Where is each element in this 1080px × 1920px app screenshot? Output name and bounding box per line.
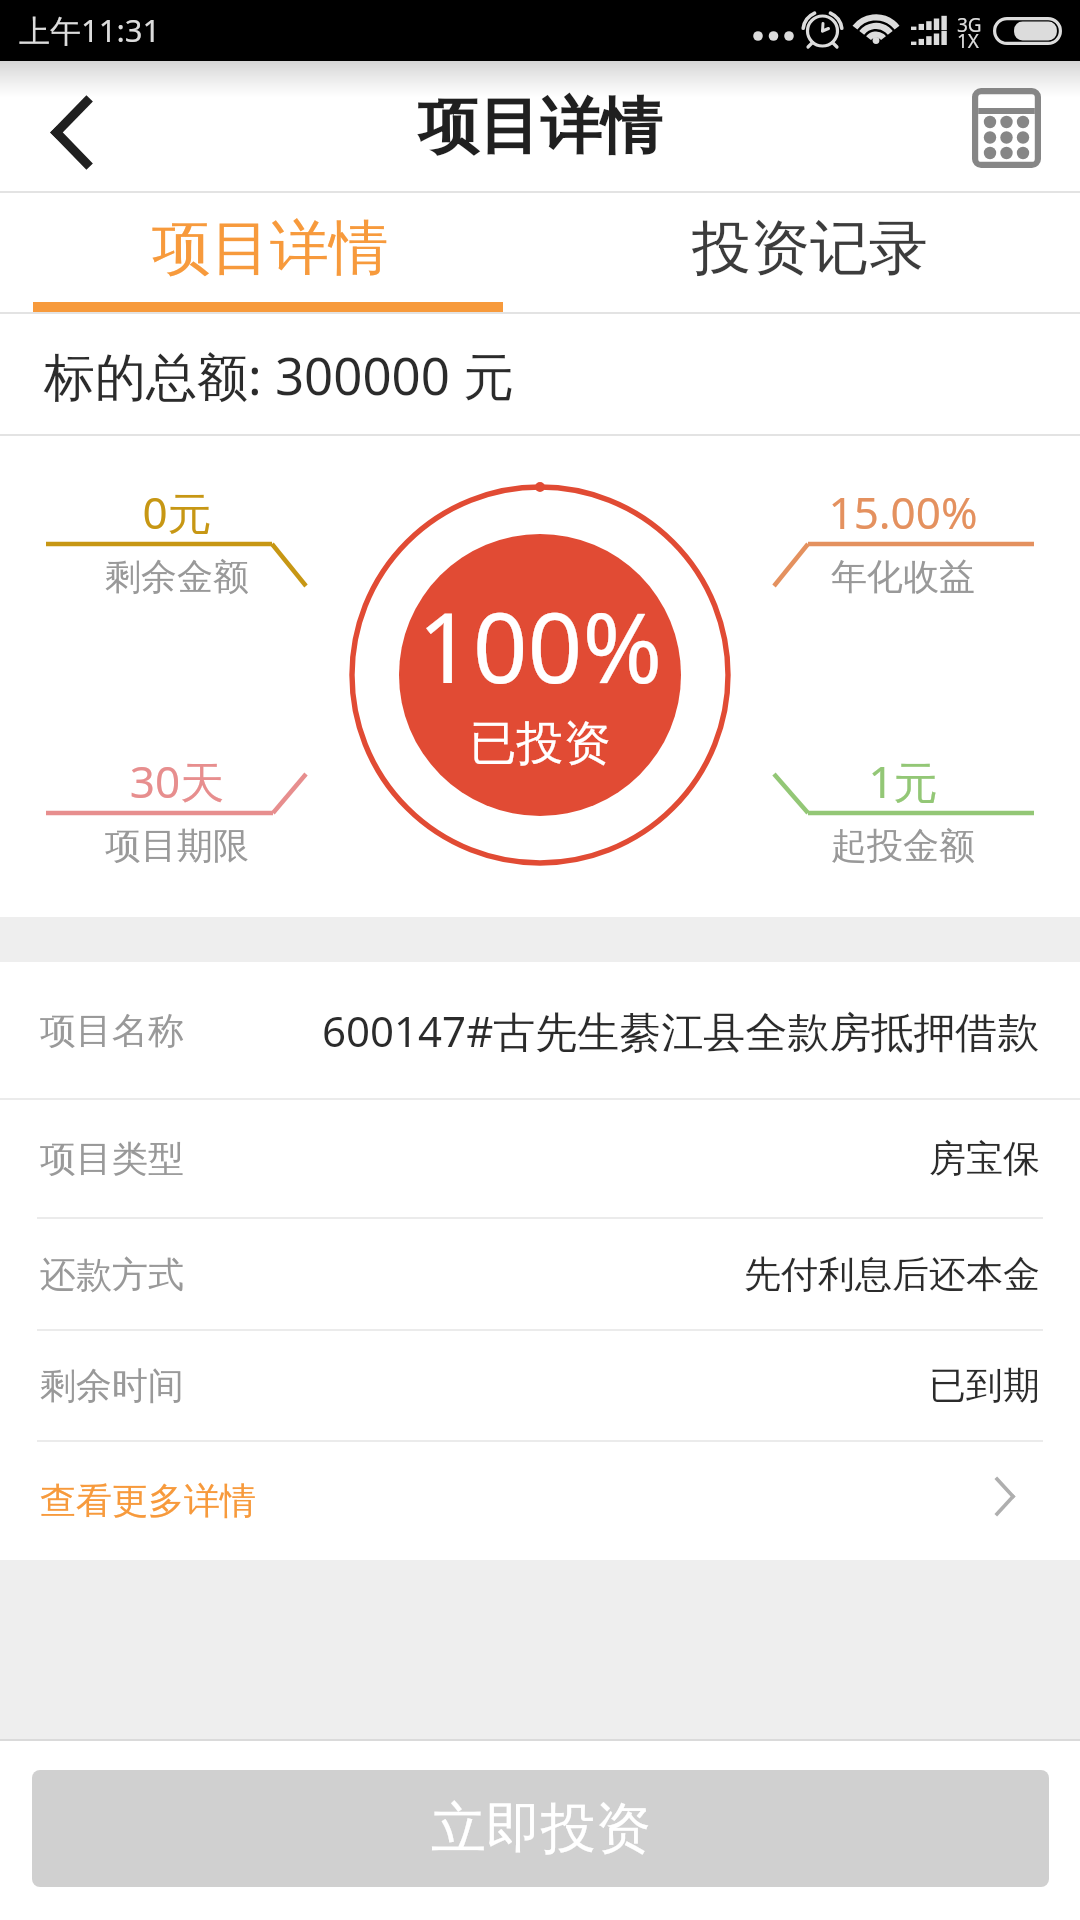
button[interactable]: 项目详情 [0,193,540,313]
staticText: 30天 [27,751,327,807]
button[interactable]: Back [0,61,142,193]
staticText: 15.00% [753,482,1053,538]
button[interactable]: 剩余时间 [0,1330,1080,1441]
staticText: 已投资 [340,714,740,773]
staticText: 项目详情 [152,211,388,285]
staticText: 剩余金额 [27,554,327,599]
staticText: 上午11:31 [19,9,161,51]
button[interactable]: 还款方式 [0,1218,1080,1330]
staticText: 投资记录 [692,211,928,285]
staticText: 房宝保 [929,1135,1040,1182]
staticText: 1元 [753,751,1053,807]
staticText: 还款方式 [40,1252,184,1297]
button[interactable]: 投资记录 [540,193,1080,313]
staticText: 年化收益 [753,554,1053,599]
button[interactable]: 查看更多详情 [0,1441,1080,1560]
button[interactable]: Calculator [958,61,1080,193]
staticText: 3G [957,12,982,38]
staticText: 0元 [27,482,327,538]
staticText: 起投金额 [753,823,1053,868]
staticText: 1X [957,28,980,54]
staticText: 先付利息后还本金 [744,1251,1040,1298]
staticText: 查看更多详情 [40,1478,256,1523]
staticText: 项目期限 [27,823,327,868]
button[interactable]: 项目名称 [0,962,1080,1099]
button[interactable]: 立即投资 [32,1770,1049,1887]
staticText: 100% [340,580,740,711]
staticText: 标的总额: 300000 元 [44,340,515,410]
staticText: 项目类型 [40,1136,184,1181]
button[interactable]: 项目类型 [0,1099,1080,1218]
staticText: 600147#古先生綦江县全款房抵押借款 [322,1002,1040,1059]
staticText: 项目名称 [40,1008,184,1053]
staticText: 项目详情 [418,88,662,165]
staticText: 剩余时间 [40,1363,184,1408]
staticText: 已到期 [929,1362,1040,1409]
staticText: 立即投资 [431,1794,651,1863]
